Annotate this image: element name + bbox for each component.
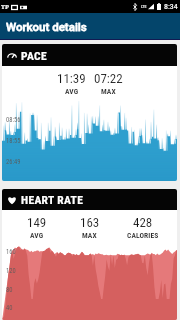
button[interactable]: PACE [2,44,177,66]
staticText: 11:39 [57,71,86,86]
staticText: 07:22 [94,71,123,86]
staticText: 149 [27,215,47,230]
staticText: HEART RATE [21,193,84,206]
staticText: 80 [6,286,13,294]
staticText: MAX [101,87,116,95]
staticText: 08:56 [6,116,21,124]
staticText: Workout details [6,20,87,33]
staticText: 8:34 [164,2,178,11]
staticText: TP [1,3,9,11]
staticText: LTE [141,4,147,9]
staticText: AVG [65,87,79,95]
button[interactable]: 11:39 [53,66,90,95]
staticText: 26:49 [6,158,21,166]
staticText: 160 [6,248,16,256]
button[interactable]: 428 [116,210,169,239]
button[interactable]: 163 [63,210,116,239]
staticText: AVG [30,231,44,239]
staticText: 18:55 [6,137,21,145]
button[interactable]: 07:22 [90,66,127,95]
staticText: PACE [21,49,47,62]
staticText: 163 [80,215,100,230]
button[interactable]: HEART RATE [2,189,177,210]
staticText: CALORIES [127,231,159,239]
button[interactable]: Workout details [0,13,180,39]
staticText: 40 [6,304,13,312]
staticText: 120 [6,267,16,275]
staticText: 428 [133,215,153,230]
button[interactable]: 149 [10,210,63,239]
staticText: MAX [82,231,97,239]
